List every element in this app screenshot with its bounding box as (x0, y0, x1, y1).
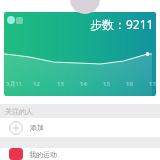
staticText: 3月11 (6, 80, 23, 88)
staticText: 16 (126, 80, 133, 88)
staticText: 我的运动 (29, 150, 57, 159)
button[interactable]: 我的运动 (0, 148, 160, 160)
button[interactable]: 3月11 (4, 12, 156, 96)
button[interactable]: 添加 (0, 118, 160, 137)
staticText: 13 (57, 80, 64, 88)
staticText: 添加 (30, 123, 44, 132)
staticText: 14 (80, 80, 87, 88)
other: Profile (70, 0, 100, 14)
staticText: 17 (149, 80, 156, 88)
staticText: 步数：9211 (90, 16, 154, 32)
staticText: 15 (103, 80, 110, 88)
staticText: 关注的人 (5, 107, 33, 116)
staticText: 12 (33, 80, 40, 88)
